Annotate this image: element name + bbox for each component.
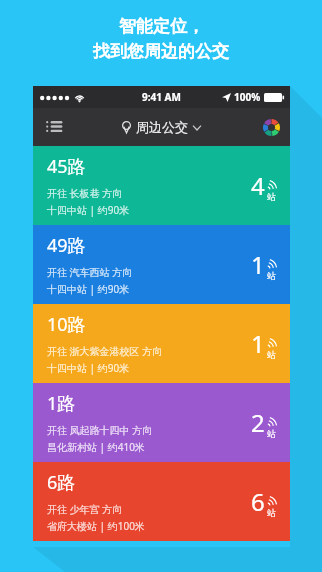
staticText: 十四中站 | 约90米	[47, 282, 130, 296]
staticText: 昌化新村站 | 约410米	[47, 440, 145, 454]
staticText: 9:41 AM	[142, 90, 181, 104]
staticText: 2	[251, 406, 265, 439]
staticText: 49路	[47, 233, 86, 258]
staticText: 周边公交	[136, 119, 188, 135]
staticText: 十四中站 | 约90米	[47, 361, 130, 375]
button[interactable]: Camera	[259, 115, 283, 139]
staticText: 6	[251, 485, 265, 518]
staticText: 6路	[47, 470, 76, 495]
staticText: 站	[267, 428, 276, 439]
button[interactable]: 45路	[33, 146, 290, 225]
staticText: 100%	[234, 90, 261, 104]
staticText: 站	[267, 270, 276, 281]
staticText: 开往 少年宫 方向	[47, 502, 123, 516]
staticText: 站	[267, 349, 276, 360]
staticText: 开往 汽车西站 方向	[47, 265, 133, 279]
staticText: 开往 长板巷 方向	[47, 186, 123, 200]
button[interactable]: 1路	[33, 383, 290, 462]
staticText: 45路	[47, 154, 86, 179]
button[interactable]: Menu	[40, 113, 68, 141]
staticText: 找到您周边的公交	[93, 41, 229, 62]
button[interactable]: 周边公交	[116, 115, 207, 139]
staticText: 十四中站 | 约90米	[47, 203, 130, 217]
staticText: 1	[251, 327, 265, 360]
button[interactable]: 10路	[33, 304, 290, 383]
staticText: 4	[251, 169, 265, 202]
staticText: 开往 凤起路十四中 方向	[47, 423, 153, 437]
button[interactable]: 49路	[33, 225, 290, 304]
staticText: 1路	[47, 391, 76, 416]
staticText: 站	[267, 507, 276, 518]
staticText: 省府大楼站 | 约100米	[47, 519, 145, 533]
staticText: 站	[267, 191, 276, 202]
button[interactable]: 6路	[33, 462, 290, 541]
staticText: 1	[251, 248, 265, 281]
staticText: 开往 浙大紫金港校区 方向	[47, 344, 163, 358]
staticText: 智能定位，	[119, 16, 204, 37]
staticText: 10路	[47, 312, 86, 337]
